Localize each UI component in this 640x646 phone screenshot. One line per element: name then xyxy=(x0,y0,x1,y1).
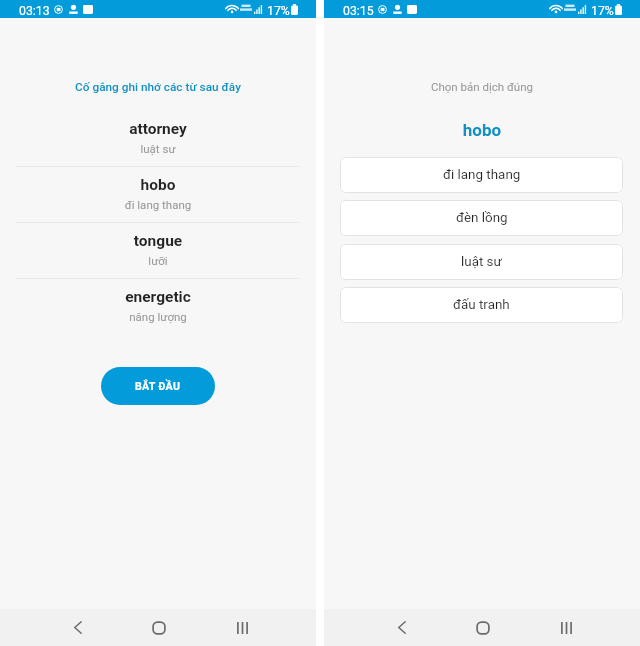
staticText: 17% xyxy=(591,4,614,18)
staticText: attorney xyxy=(0,120,316,138)
staticText: 03:15 xyxy=(343,4,374,18)
staticText: Cố gắng ghi nhớ các từ sau đây xyxy=(0,80,316,94)
button[interactable]: BẮT ĐẦU xyxy=(101,367,215,405)
staticText: đấu tranh xyxy=(453,297,510,313)
button[interactable]: attorney xyxy=(0,111,316,167)
button[interactable]: hobo xyxy=(0,167,316,223)
button[interactable]: Back xyxy=(58,611,98,644)
staticText: Chọn bản dịch đúng xyxy=(324,80,640,93)
staticText: đi lang thang xyxy=(443,167,521,183)
button[interactable]: Home xyxy=(139,611,179,644)
staticText: BẮT ĐẦU xyxy=(135,380,181,392)
button[interactable]: Recent apps xyxy=(546,611,586,644)
staticText: đi lang thang xyxy=(0,198,316,211)
button[interactable]: tongue xyxy=(0,223,316,279)
staticText: hobo xyxy=(324,120,640,140)
staticText: luật sư xyxy=(461,254,502,270)
staticText: hobo xyxy=(0,176,316,194)
button[interactable]: đi lang thang xyxy=(340,157,623,193)
staticText: đèn lồng xyxy=(456,210,508,226)
button[interactable]: Back xyxy=(382,611,422,644)
staticText: 03:13 xyxy=(19,4,50,18)
staticText: energetic xyxy=(0,288,316,306)
button[interactable]: energetic xyxy=(0,279,316,335)
button[interactable]: Home xyxy=(463,611,503,644)
button[interactable]: Recent apps xyxy=(222,611,262,644)
button[interactable]: luật sư xyxy=(340,244,623,280)
button[interactable]: đèn lồng xyxy=(340,200,623,236)
staticText: lưỡi xyxy=(0,254,316,267)
staticText: 17% xyxy=(267,4,290,18)
staticText: luật sư xyxy=(0,142,316,155)
staticText: tongue xyxy=(0,232,316,250)
button[interactable]: đấu tranh xyxy=(340,287,623,323)
staticText: năng lượng xyxy=(0,310,316,323)
